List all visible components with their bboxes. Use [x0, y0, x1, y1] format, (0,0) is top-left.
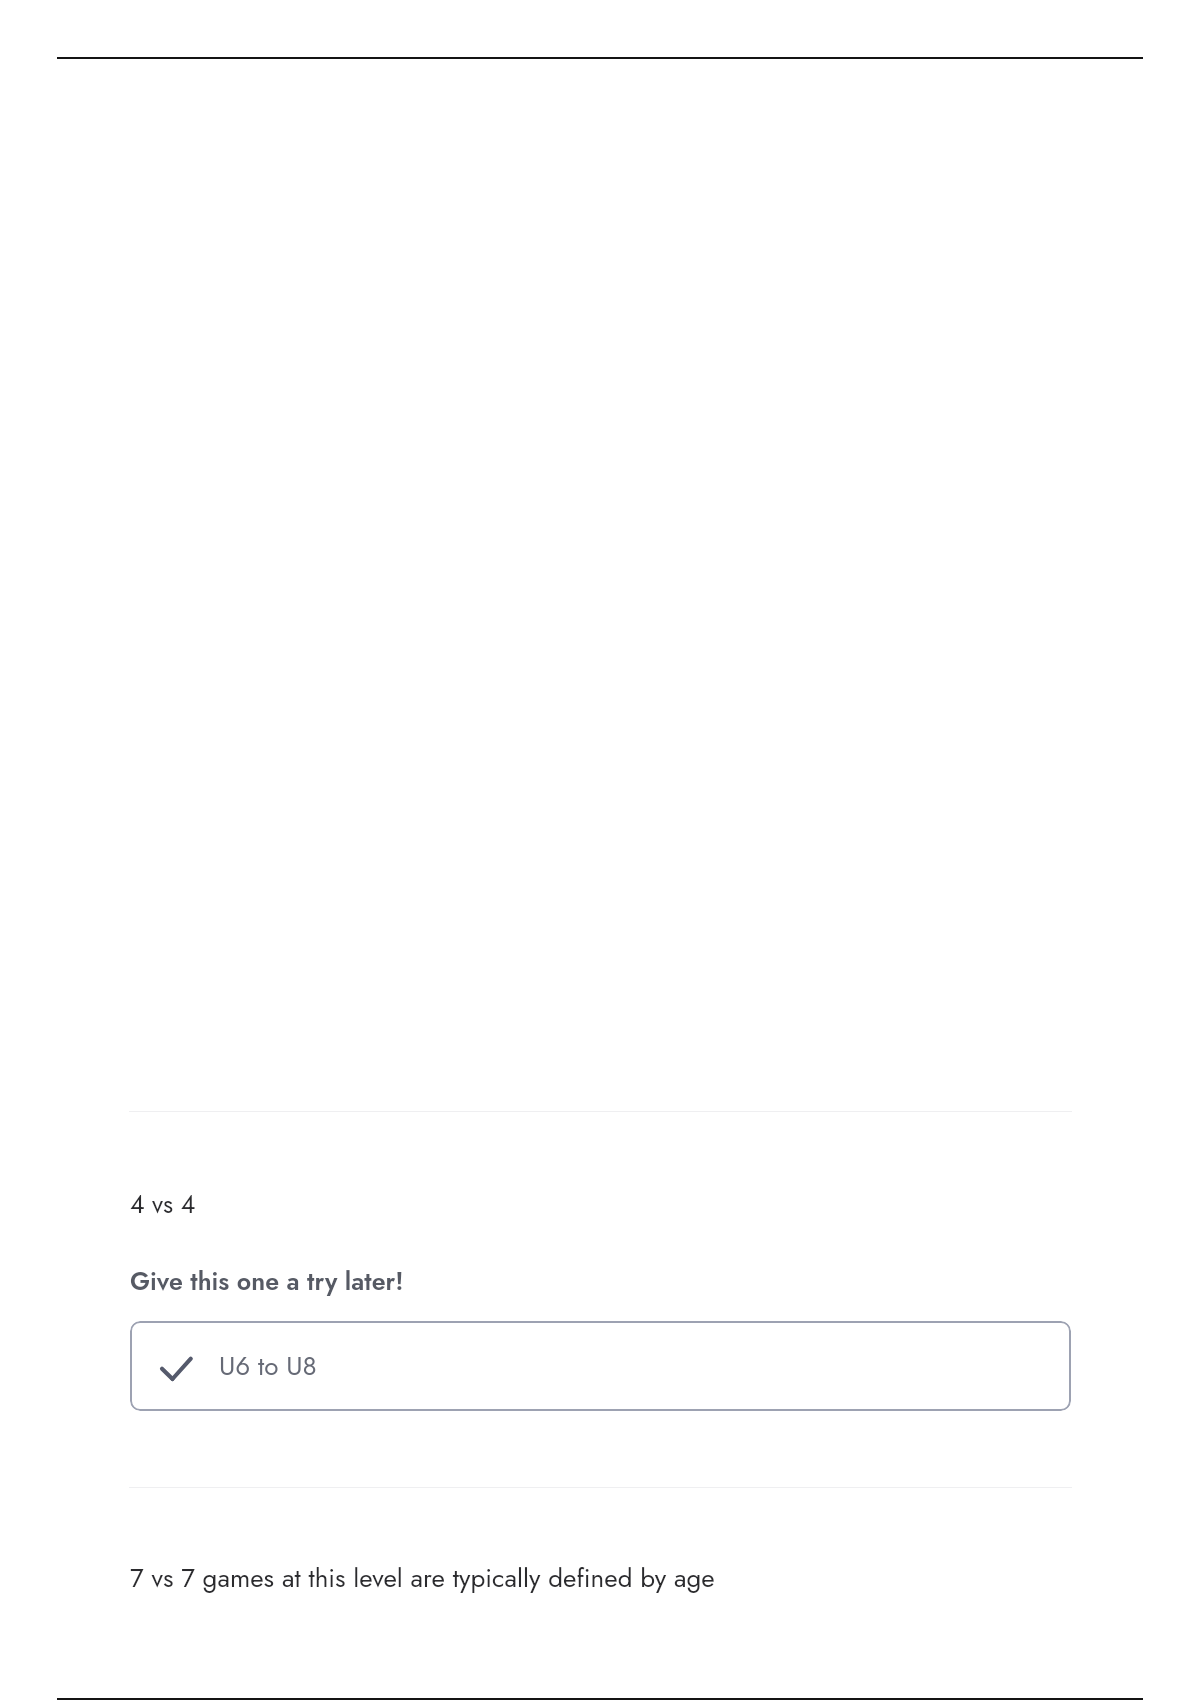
staticText: Give this one a try later! — [130, 1263, 404, 1299]
button[interactable]: Selected — [130, 1321, 1071, 1411]
staticText: 7 vs 7 games at this level are typically… — [130, 1559, 715, 1597]
staticText: U6 to U8 — [219, 1347, 317, 1385]
other: Selected — [158, 1351, 194, 1381]
staticText: 4 vs 4 — [130, 1186, 196, 1222]
